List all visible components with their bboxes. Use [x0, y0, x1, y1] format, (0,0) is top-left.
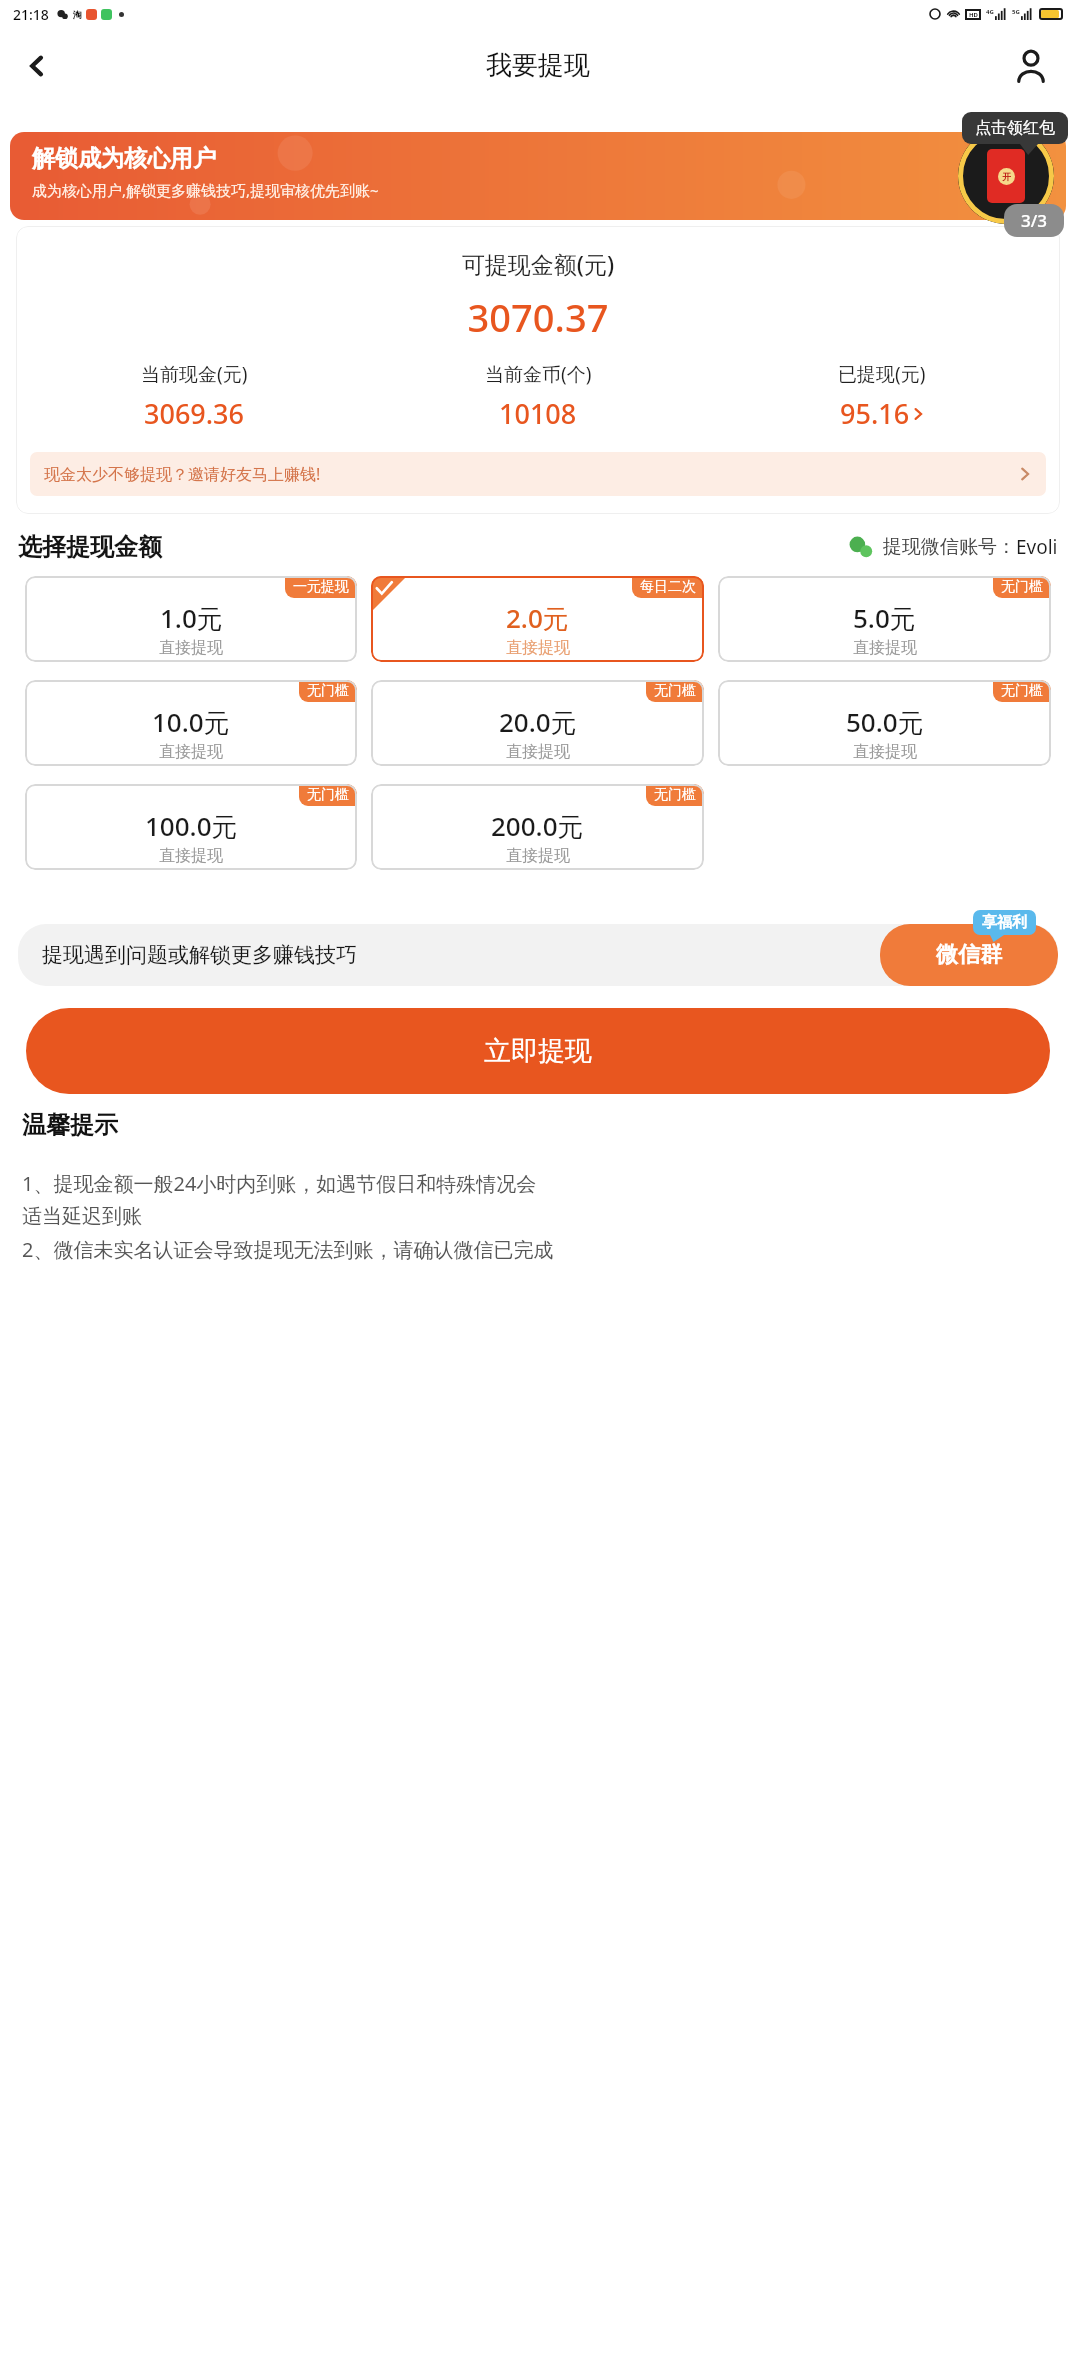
staticText: 无门槛 [307, 682, 349, 700]
staticText: 20.0元 [499, 704, 577, 740]
staticText: 3069.36 [144, 395, 245, 432]
staticText: 开 [1002, 171, 1011, 182]
button[interactable]: 2.0元 [371, 576, 704, 662]
staticText: 直接提现 [506, 638, 570, 658]
staticText: 10108 [499, 395, 577, 432]
staticText: 2.0元 [506, 600, 569, 636]
staticText: 微信群 [936, 941, 1002, 969]
button[interactable]: 现金太少不够提现？邀请好友马上赚钱! [30, 452, 1046, 496]
button[interactable]: 立即提现 [26, 1008, 1050, 1094]
staticText: Evoli [1016, 534, 1058, 560]
staticText: HD [969, 11, 978, 19]
staticText: 100.0元 [145, 808, 238, 844]
staticText: 无门槛 [654, 786, 696, 804]
staticText: 享福利 [982, 913, 1027, 932]
staticText: 已提现(元) [838, 361, 926, 387]
staticText: 每日二次 [640, 578, 696, 596]
staticText: 5.0元 [853, 600, 916, 636]
staticText: 直接提现 [159, 638, 223, 658]
staticText: 当前现金(元) [141, 361, 248, 387]
staticText: 淘 [73, 9, 82, 20]
button[interactable]: 20.0元 [371, 680, 704, 766]
staticText: 现金太少不够提现？邀请好友马上赚钱! [44, 463, 321, 485]
staticText: 我要提现 [486, 49, 590, 82]
staticText: 1.0元 [160, 600, 223, 636]
button[interactable]: Open red packet [958, 128, 1054, 224]
button[interactable]: 200.0元 [371, 784, 704, 870]
staticText: 直接提现 [506, 742, 570, 762]
staticText: 4G [986, 8, 994, 16]
staticText: 成为核心用户,解锁更多赚钱技巧,提现审核优先到账~ [32, 180, 379, 200]
staticText: 200.0元 [491, 808, 584, 844]
staticText: 温馨提示 [22, 1110, 118, 1140]
button[interactable]: 1.0元 [25, 576, 357, 662]
button[interactable]: 当前金币(个) [366, 361, 710, 432]
staticText: 直接提现 [506, 846, 570, 866]
staticText: 直接提现 [159, 742, 223, 762]
button[interactable]: 解锁成为核心用户 [10, 132, 1066, 220]
staticText: 50.0元 [846, 704, 924, 740]
staticText: 无门槛 [654, 682, 696, 700]
button[interactable]: 当前现金(元) [22, 361, 366, 432]
staticText: 3070.37 [16, 291, 1060, 343]
staticText: 10.0元 [152, 704, 230, 740]
staticText: 1、提现金额一般24小时内到账，如遇节假日和特殊情况会 [22, 1170, 537, 1197]
staticText: 直接提现 [159, 846, 223, 866]
button[interactable]: Profile [1004, 39, 1058, 93]
staticText: 2、微信未实名认证会导致提现无法到账，请确认微信已完成 [22, 1236, 554, 1263]
staticText: 直接提现 [853, 638, 917, 658]
staticText: 点击领红包 [975, 118, 1055, 138]
button[interactable]: 100.0元 [25, 784, 357, 870]
staticText: 当前金币(个) [485, 361, 592, 387]
staticText: 无门槛 [1001, 682, 1043, 700]
staticText: 无门槛 [1001, 578, 1043, 596]
staticText: 无门槛 [307, 786, 349, 804]
staticText: 选择提现金额 [18, 532, 162, 562]
staticText: 解锁成为核心用户 [32, 144, 216, 173]
button[interactable]: 提现遇到问题或解锁更多赚钱技巧 [18, 924, 1058, 986]
staticText: 提现微信账号： [883, 535, 1016, 559]
staticText: 95.16 [840, 395, 910, 432]
staticText: 21:18 [13, 5, 49, 24]
staticText: 提现遇到问题或解锁更多赚钱技巧 [42, 942, 357, 968]
staticText: 立即提现 [484, 1034, 592, 1068]
button[interactable]: 5.0元 [718, 576, 1051, 662]
staticText: 可提现金额(元) [16, 248, 1060, 279]
staticText: 3/3 [1021, 209, 1047, 232]
button[interactable]: 10.0元 [25, 680, 357, 766]
staticText: 直接提现 [853, 742, 917, 762]
staticText: 5G [1012, 8, 1020, 16]
button[interactable]: 50.0元 [718, 680, 1051, 766]
staticText: 适当延迟到账 [22, 1204, 142, 1229]
button[interactable]: Back [10, 39, 64, 93]
button[interactable]: 已提现(元) [710, 361, 1054, 432]
staticText: 一元提现 [293, 578, 349, 596]
